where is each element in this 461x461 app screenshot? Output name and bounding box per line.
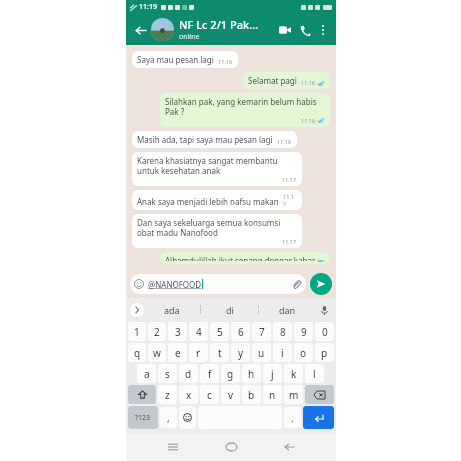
staticText: online: [179, 32, 200, 42]
button[interactable]: Recent apps: [162, 436, 184, 458]
staticText: 11.17: [282, 176, 297, 183]
staticText: ,: [167, 411, 170, 425]
button[interactable]: 7: [252, 322, 271, 341]
staticText: k: [291, 367, 297, 381]
button[interactable]: 6: [231, 322, 250, 341]
button[interactable]: e: [168, 343, 187, 362]
button[interactable]: ,: [160, 407, 177, 428]
button[interactable]: 2: [148, 322, 166, 341]
staticText: ada: [164, 304, 180, 316]
button[interactable]: y: [231, 343, 250, 362]
button[interactable]: l: [305, 364, 324, 383]
staticText: 3: [175, 325, 181, 339]
button[interactable]: c: [200, 385, 219, 404]
staticText: 0: [322, 325, 328, 339]
button[interactable]: s: [158, 364, 177, 383]
button[interactable]: 9: [294, 322, 313, 341]
button[interactable]: v: [221, 385, 240, 404]
button[interactable]: Anak saya menjadi lebih nafsu makan: [132, 190, 302, 210]
button[interactable]: Masih ada, tapi saya mau pesan lagi: [132, 131, 297, 148]
button[interactable]: Profile photo: [151, 18, 174, 41]
staticText: Silahkan pak, yang kemarin belum habis P…: [165, 96, 325, 117]
staticText: e: [175, 346, 181, 360]
button[interactable]: d: [179, 364, 198, 383]
button[interactable]: 5: [210, 322, 229, 341]
button[interactable]: More options: [315, 22, 331, 38]
staticText: 6: [238, 325, 244, 339]
button[interactable]: z: [158, 385, 177, 404]
staticText: m: [289, 388, 299, 402]
button[interactable]: .: [284, 407, 301, 428]
staticText: o: [300, 346, 307, 360]
staticText: Anak saya menjadi lebih nafsu makan: [137, 196, 279, 207]
button[interactable]: w: [148, 343, 166, 362]
button[interactable]: 8: [273, 322, 292, 341]
button[interactable]: r: [189, 343, 208, 362]
button[interactable]: u: [252, 343, 271, 362]
button[interactable]: Selamat pagi: [243, 72, 330, 89]
button[interactable]: g: [221, 364, 240, 383]
button[interactable]: a: [137, 364, 156, 383]
button[interactable]: Key: [305, 385, 334, 404]
button[interactable]: f: [200, 364, 219, 383]
button[interactable]: Attach: [291, 279, 302, 290]
button[interactable]: Key: [128, 385, 156, 404]
staticText: 11:19: [139, 2, 157, 12]
button[interactable]: Silahkan pak, yang kemarin belum habis P…: [160, 93, 330, 127]
button[interactable]: Enter: [303, 406, 334, 429]
button[interactable]: q: [128, 343, 146, 362]
staticText: di: [226, 304, 234, 316]
button[interactable]: Karena khasiatnya sangat membantu untuk …: [132, 152, 302, 186]
button[interactable]: Saya mau pesan lagi: [132, 51, 238, 68]
staticText: u: [258, 346, 265, 360]
staticText: dan: [279, 304, 296, 316]
button[interactable]: ?123: [128, 406, 158, 429]
staticText: q: [134, 346, 141, 360]
button[interactable]: Alhamdulillah ikut senang dengar kabar b…: [160, 252, 330, 264]
staticText: 11.16: [277, 138, 292, 145]
button[interactable]: Back: [278, 436, 300, 458]
staticText: t: [218, 346, 222, 360]
staticText: @NANOFOOD: [148, 279, 202, 290]
button[interactable]: 0: [315, 322, 334, 341]
staticText: i: [281, 346, 284, 360]
button[interactable]: j: [263, 364, 282, 383]
button[interactable]: NF Lc 2/1 Pak…: [179, 17, 275, 42]
button[interactable]: Send: [310, 273, 332, 295]
button[interactable]: ada: [144, 298, 200, 321]
staticText: ?123: [135, 413, 151, 423]
button[interactable]: Back: [131, 21, 149, 39]
button[interactable]: 4: [189, 322, 208, 341]
button[interactable]: @NANOFOOD: [130, 274, 306, 294]
staticText: 5: [217, 325, 223, 339]
button[interactable]: Expand: [130, 303, 144, 317]
button[interactable]: 1: [128, 322, 146, 341]
button[interactable]: Home: [220, 436, 242, 458]
button[interactable]: Video call: [275, 20, 295, 40]
button[interactable]: Dan saya sekeluarga semua konsumsi obat …: [132, 214, 302, 248]
button[interactable]: p: [315, 343, 334, 362]
button[interactable]: n: [263, 385, 282, 404]
staticText: g: [227, 367, 234, 381]
button[interactable]: i: [273, 343, 292, 362]
button[interactable]: t: [210, 343, 229, 362]
button[interactable]: k: [284, 364, 303, 383]
button[interactable]: di: [201, 298, 258, 321]
staticText: Dan saya sekeluarga semua konsumsi obat …: [137, 217, 297, 238]
staticText: c: [207, 388, 212, 402]
button[interactable]: b: [242, 385, 261, 404]
button[interactable]: m: [284, 385, 303, 404]
staticText: h: [248, 367, 255, 381]
staticText: Alhamdulillah ikut senang dengar kabar b…: [165, 255, 325, 261]
button[interactable]: h: [242, 364, 261, 383]
button[interactable]: 3: [168, 322, 187, 341]
staticText: Karena khasiatnya sangat membantu untuk …: [137, 155, 297, 176]
button[interactable]: Voice input: [316, 302, 332, 318]
button[interactable]: o: [294, 343, 313, 362]
button[interactable]: dan: [259, 298, 316, 321]
button[interactable]: x: [179, 385, 198, 404]
button[interactable]: Emoji: [179, 406, 196, 429]
staticText: b: [248, 388, 255, 402]
button[interactable]: Voice call: [295, 20, 315, 40]
